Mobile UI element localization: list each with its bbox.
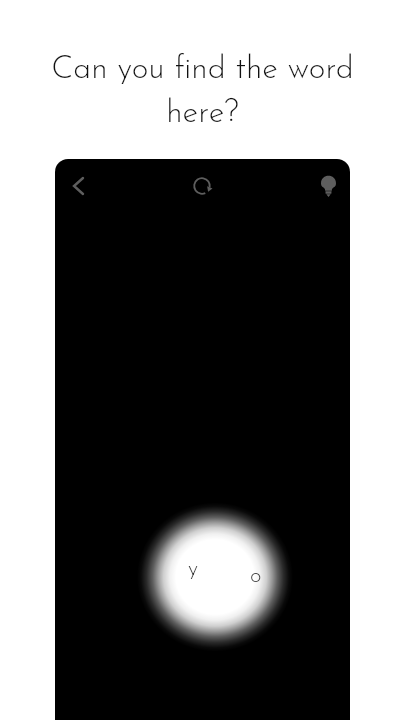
- staticText: Can you find the word here?: [30, 54, 375, 130]
- staticText: y: [188, 558, 198, 580]
- button[interactable]: Back: [55, 162, 102, 210]
- staticText: o: [250, 565, 262, 587]
- button[interactable]: Refresh: [178, 162, 226, 210]
- button[interactable]: Hint: [304, 162, 350, 210]
